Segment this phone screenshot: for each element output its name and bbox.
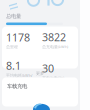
staticText: 8.1 (6, 58, 21, 73)
staticText: 总里程 (6, 44, 18, 49)
staticText: 3822 (42, 30, 66, 44)
staticText: 1178 (6, 30, 30, 44)
staticText: 充电次数(次) (42, 75, 64, 81)
staticText: 平均电耗(kWh/100km) (6, 73, 32, 83)
staticText: 30 (42, 61, 54, 75)
staticText: 更多 (36, 71, 44, 76)
staticText: 车载充电 (7, 83, 27, 90)
staticText: 总充电量(kWh) (42, 44, 68, 49)
staticText: 总电量 (6, 13, 21, 20)
